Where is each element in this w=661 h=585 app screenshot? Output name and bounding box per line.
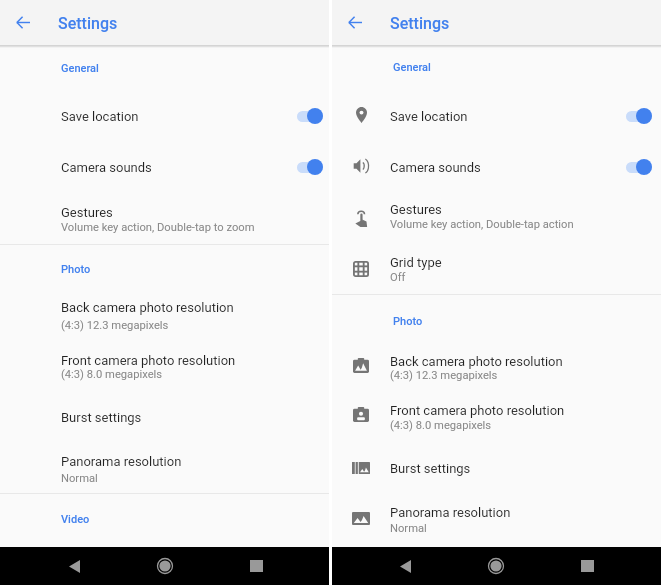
staticText: Panorama resolution xyxy=(390,505,511,520)
staticText: Camera sounds xyxy=(390,160,481,175)
button[interactable]: Navigate up xyxy=(341,8,369,36)
staticText: Gestures xyxy=(390,202,442,217)
button[interactable] xyxy=(0,95,329,144)
staticText: (4:3) 8.0 megapixels xyxy=(61,368,163,381)
staticText: Burst settings xyxy=(61,410,142,425)
staticText: General xyxy=(61,62,99,75)
staticText: Panorama resolution xyxy=(61,454,182,469)
staticText: Settings xyxy=(58,14,118,33)
button[interactable]: Toggle setting xyxy=(297,108,323,124)
button[interactable]: Navigate up xyxy=(9,8,37,36)
button[interactable] xyxy=(0,339,329,391)
staticText: Settings xyxy=(390,14,450,33)
button[interactable]: Recent apps xyxy=(567,547,607,585)
button[interactable]: Home xyxy=(476,547,516,585)
staticText: Normal xyxy=(390,522,427,535)
button[interactable] xyxy=(332,95,661,144)
staticText: Gestures xyxy=(61,205,113,220)
staticText: Video xyxy=(61,513,90,526)
button[interactable] xyxy=(332,340,661,390)
button[interactable] xyxy=(0,391,329,437)
staticText: (4:3) 12.3 megapixels xyxy=(390,369,498,382)
button[interactable] xyxy=(332,390,661,440)
staticText: Front camera photo resolution xyxy=(390,403,565,418)
staticText: Burst settings xyxy=(390,461,471,476)
button[interactable] xyxy=(332,191,661,241)
staticText: Normal xyxy=(61,472,98,485)
button[interactable]: Recent apps xyxy=(236,547,276,585)
button[interactable]: Back xyxy=(54,547,94,585)
staticText: Front camera photo resolution xyxy=(61,353,236,368)
button[interactable] xyxy=(332,241,661,294)
button[interactable] xyxy=(0,437,329,493)
button[interactable] xyxy=(332,488,661,542)
button[interactable] xyxy=(332,440,661,488)
button[interactable] xyxy=(0,144,329,191)
staticText: Off xyxy=(390,271,406,284)
staticText: Save location xyxy=(61,109,139,124)
button[interactable] xyxy=(0,288,329,339)
button[interactable] xyxy=(332,144,661,191)
staticText: Photo xyxy=(393,315,423,328)
staticText: (4:3) 8.0 megapixels xyxy=(390,419,492,432)
button[interactable]: Toggle setting xyxy=(626,159,652,175)
staticText: Back camera photo resolution xyxy=(61,300,234,315)
button[interactable]: Settings xyxy=(56,10,126,36)
button[interactable]: Settings xyxy=(388,10,458,36)
staticText: Volume key action, Double-tap to zoom xyxy=(61,221,255,234)
staticText: General xyxy=(393,61,431,74)
button[interactable] xyxy=(0,191,329,244)
staticText: (4:3) 12.3 megapixels xyxy=(61,319,169,332)
button[interactable]: Toggle setting xyxy=(297,159,323,175)
staticText: Save location xyxy=(390,109,468,124)
staticText: Volume key action, Double-tap action xyxy=(390,218,574,231)
button[interactable]: Toggle setting xyxy=(626,108,652,124)
button[interactable]: Home xyxy=(145,547,185,585)
button[interactable]: Back xyxy=(385,547,425,585)
staticText: Camera sounds xyxy=(61,160,152,175)
staticText: Grid type xyxy=(390,255,442,270)
staticText: Back camera photo resolution xyxy=(390,354,563,369)
staticText: Photo xyxy=(61,263,91,276)
